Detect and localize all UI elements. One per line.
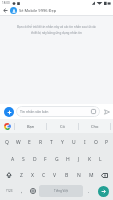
staticText: Q <box>5 139 9 146</box>
staticText: G <box>55 156 59 163</box>
button[interactable]: Q <box>2 135 12 150</box>
staticText: Z <box>20 172 23 179</box>
button[interactable]: S <box>19 152 28 166</box>
button[interactable]: ?123 <box>1 183 17 199</box>
button[interactable]: H <box>63 152 72 166</box>
staticText: S <box>22 156 25 163</box>
button[interactable] <box>94 183 112 199</box>
staticText: K <box>88 156 92 163</box>
button[interactable]: . <box>85 184 93 198</box>
staticText: N <box>77 172 81 179</box>
button[interactable]: U <box>69 135 78 150</box>
button[interactable]: F <box>41 152 50 166</box>
staticText: Bạn <box>27 124 35 129</box>
staticText: A <box>11 156 15 163</box>
button[interactable]: K <box>85 152 94 166</box>
button[interactable]: I <box>80 135 89 150</box>
staticText: T <box>50 139 53 146</box>
button[interactable] <box>2 7 8 13</box>
button[interactable]: Bạn <box>15 119 46 133</box>
button[interactable]: O <box>91 135 100 150</box>
button[interactable]: A <box>8 152 17 166</box>
staticText: U <box>72 139 76 146</box>
button[interactable]: Z <box>17 168 26 182</box>
button[interactable]: B <box>62 168 72 182</box>
button[interactable]: X <box>28 168 37 182</box>
staticText: V <box>53 172 57 179</box>
button[interactable]: E <box>25 135 34 150</box>
staticText: P <box>105 139 109 146</box>
staticText: Cho <box>91 124 99 129</box>
staticText: ?123 <box>6 189 13 193</box>
staticText: J <box>78 156 80 163</box>
staticText: L <box>99 156 102 163</box>
button[interactable]: J <box>74 152 83 166</box>
button[interactable] <box>98 168 111 182</box>
button[interactable] <box>28 184 37 198</box>
staticText: B <box>65 172 69 179</box>
button[interactable]: Tin nhắn văn bản <box>16 106 100 117</box>
button[interactable]: T <box>47 135 56 150</box>
staticText: R <box>39 139 43 146</box>
staticText: W <box>16 139 21 146</box>
staticText: Y <box>61 139 64 146</box>
staticText: Tiếng Việt <box>54 189 68 193</box>
button[interactable]: D <box>30 152 39 166</box>
button[interactable]: W <box>14 135 23 150</box>
button[interactable]: N <box>74 168 84 182</box>
button[interactable]: Y <box>58 135 67 150</box>
button[interactable]: R <box>36 135 45 150</box>
staticText: . <box>88 188 90 195</box>
staticText: H <box>66 156 70 163</box>
button[interactable] <box>2 168 15 182</box>
staticText: Bạn có thể trả lời tin nhắn này và các t… <box>17 25 97 29</box>
button[interactable]: , <box>18 184 26 198</box>
staticText: E <box>28 139 31 146</box>
staticText: I <box>84 139 86 146</box>
button[interactable] <box>4 107 14 117</box>
staticText: 18:00 <box>2 1 10 5</box>
staticText: M <box>89 172 94 179</box>
staticText: F <box>44 156 47 163</box>
button[interactable]: Tiếng Việt <box>39 185 83 197</box>
button[interactable]: P <box>102 135 111 150</box>
button[interactable]: Cho <box>79 119 110 133</box>
button[interactable]: Có <box>47 119 78 133</box>
staticText: Sè Mobile 9996 Đẹp <box>19 8 57 13</box>
button[interactable]: C <box>39 168 48 182</box>
button[interactable] <box>102 107 111 116</box>
staticText: D <box>33 156 37 163</box>
button[interactable]: V <box>50 168 60 182</box>
staticText: X <box>31 172 34 179</box>
button[interactable] <box>0 119 14 133</box>
staticText: thiết bị này bằng ứng dụng nhắn tin <box>31 31 82 35</box>
staticText: C <box>42 172 46 179</box>
button[interactable]: L <box>96 152 105 166</box>
staticText: Có <box>60 124 65 129</box>
staticText: Tin nhắn văn bản <box>20 109 49 114</box>
staticText: , <box>21 188 23 195</box>
button[interactable]: M <box>86 168 96 182</box>
button[interactable] <box>10 7 17 14</box>
staticText: O <box>94 139 98 146</box>
button[interactable]: G <box>52 152 61 166</box>
